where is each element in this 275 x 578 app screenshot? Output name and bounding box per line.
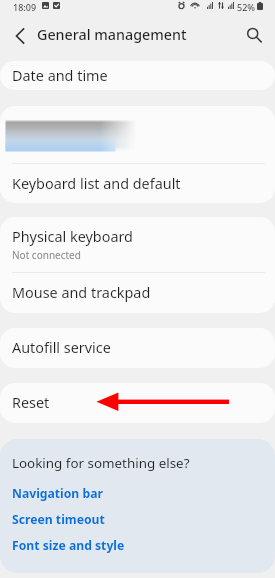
staticText: Keyboard list and default xyxy=(12,174,181,194)
button[interactable]: Keyboard list and default xyxy=(0,164,275,203)
button[interactable]: Font size and style xyxy=(12,537,125,554)
staticText: Screen timeout xyxy=(12,511,105,528)
staticText: Not connected xyxy=(12,248,81,262)
staticText: Font size and style xyxy=(12,537,125,554)
staticText: 52% xyxy=(237,1,255,12)
button[interactable]: Date and time xyxy=(0,61,275,90)
staticText: General management xyxy=(37,25,187,44)
button[interactable]: Mouse and trackpad xyxy=(0,273,275,313)
staticText: Reset xyxy=(12,393,50,413)
button[interactable]: Navigation bar xyxy=(12,485,103,502)
staticText: Date and time xyxy=(12,66,108,86)
staticText: 18:09 xyxy=(13,1,37,12)
button[interactable]: Screen timeout xyxy=(12,511,105,528)
staticText: Physical keyboard xyxy=(12,227,133,247)
staticText: Autofill service xyxy=(12,338,111,358)
button[interactable]: Navigate up xyxy=(8,24,32,48)
button[interactable]: Reset xyxy=(0,383,275,423)
button[interactable]: Search xyxy=(241,22,267,48)
staticText: Navigation bar xyxy=(12,485,103,502)
staticText: Mouse and trackpad xyxy=(12,283,151,303)
button[interactable]: Autofill service xyxy=(0,328,275,368)
button[interactable]: Physical keyboard xyxy=(0,217,275,272)
staticText: Looking for something else? xyxy=(12,454,190,472)
